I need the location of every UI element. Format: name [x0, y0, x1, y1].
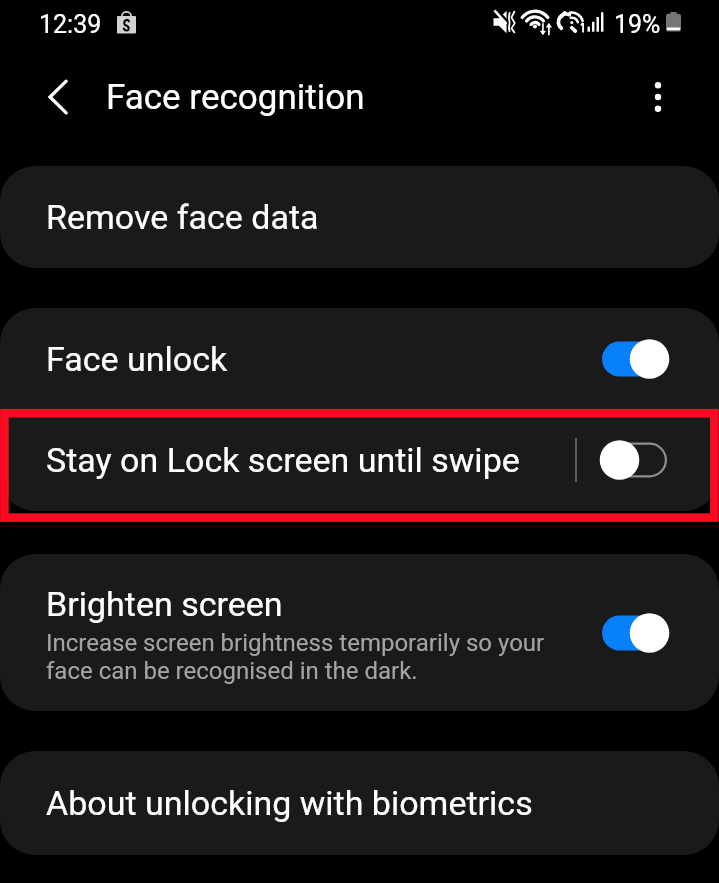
button[interactable]: Remove face data — [0, 166, 719, 268]
staticText: 19% — [614, 10, 661, 39]
staticText: Face recognition — [106, 77, 365, 118]
button[interactable]: Stay on Lock screen until swipe — [0, 409, 719, 511]
staticText: Brighten screen — [46, 584, 283, 624]
button[interactable]: Switch on — [589, 602, 679, 664]
staticText: Stay on Lock screen until swipe — [46, 440, 520, 480]
staticText: Face unlock — [46, 339, 228, 379]
button[interactable]: Face unlock — [0, 308, 719, 409]
button[interactable]: Navigate up — [22, 61, 94, 133]
staticText: Increase screen brightness temporarily s… — [46, 629, 545, 685]
button[interactable]: More options — [622, 61, 694, 133]
staticText: About unlocking with biometrics — [46, 783, 533, 823]
button[interactable]: Switch on — [589, 328, 679, 390]
button[interactable]: Switch off — [589, 429, 679, 491]
staticText: Remove face data — [46, 197, 319, 237]
button[interactable]: About unlocking with biometrics — [0, 751, 719, 855]
button[interactable]: Brighten screen — [0, 554, 719, 711]
staticText: 12:39 — [39, 10, 102, 39]
